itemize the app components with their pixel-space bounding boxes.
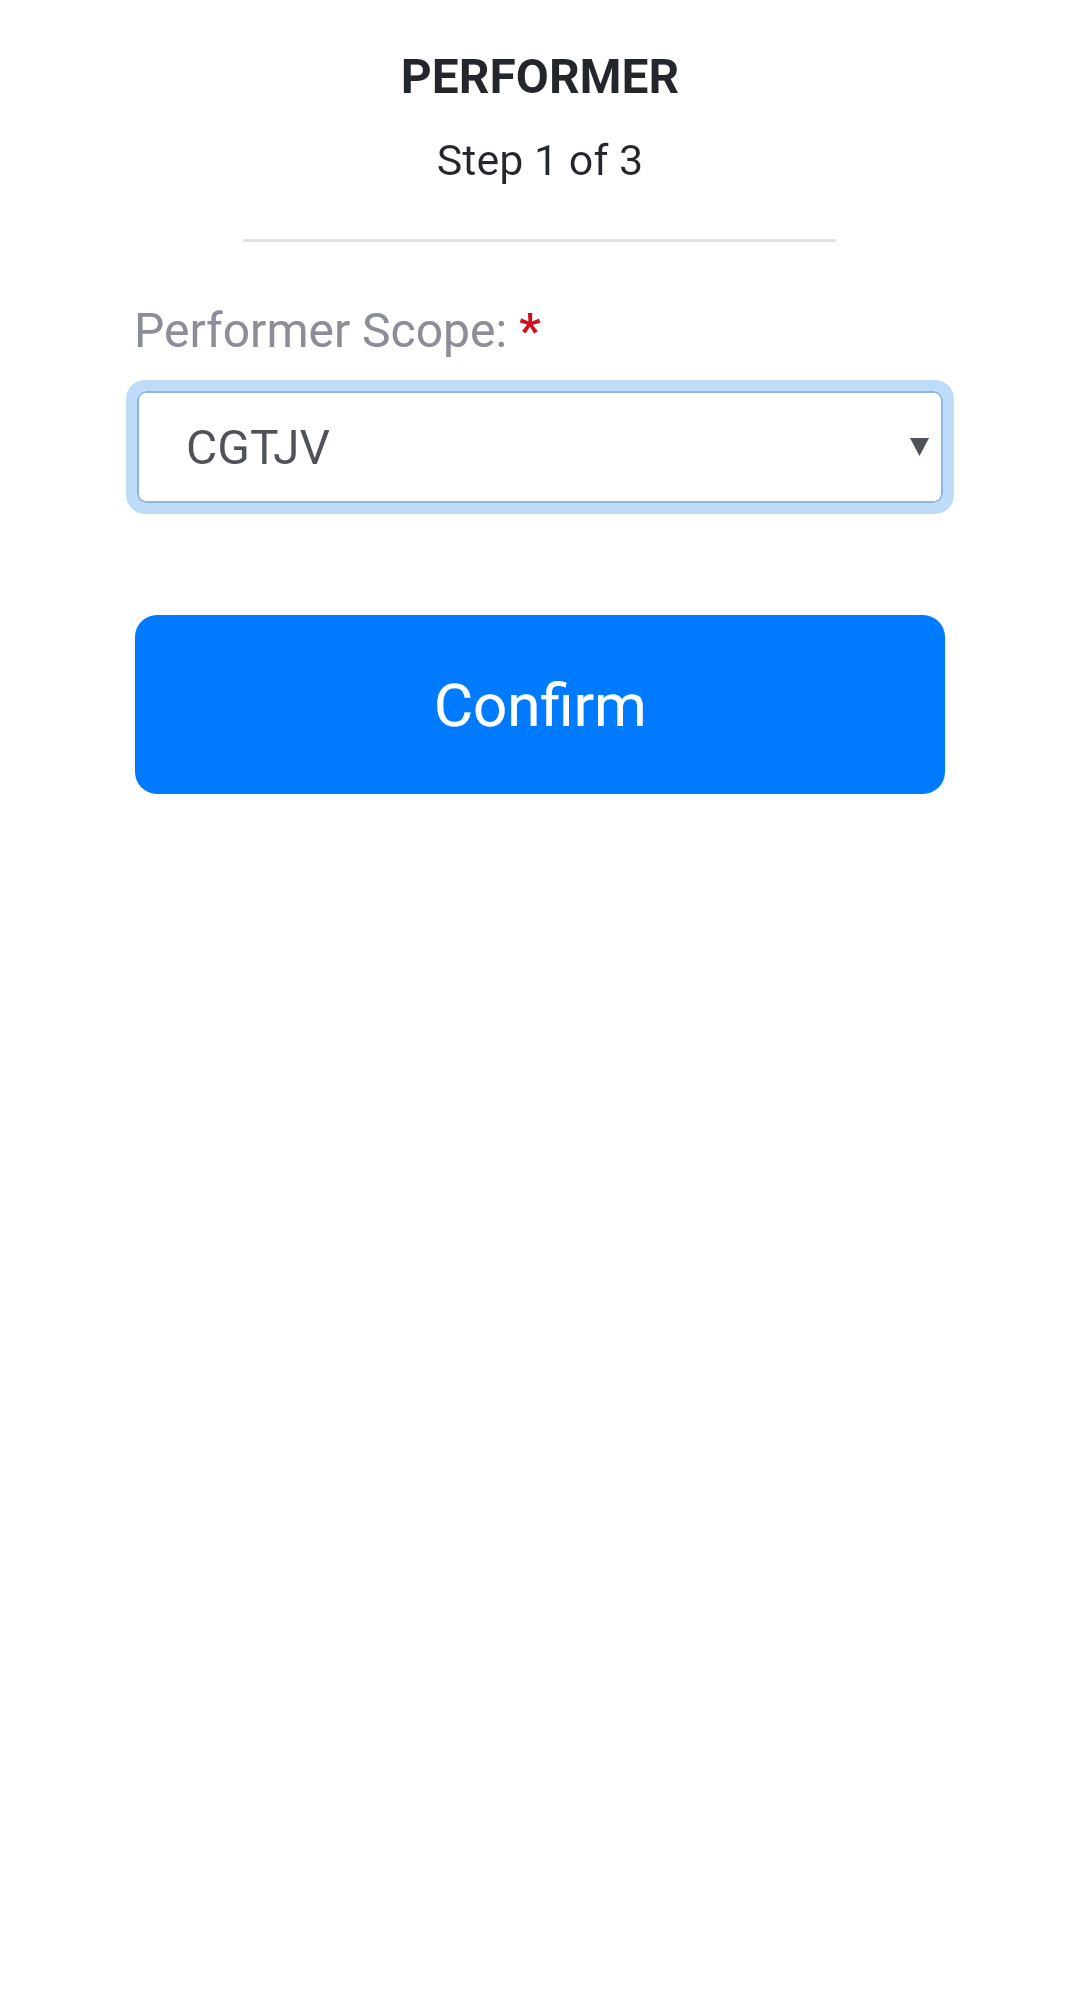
staticText: Confirm	[434, 670, 647, 740]
staticText: PERFORMER	[0, 48, 1080, 104]
staticText: Step 1 of 3	[0, 135, 1080, 185]
button[interactable]: Confirm	[135, 615, 945, 794]
staticText: Performer Scope: *	[134, 302, 541, 358]
staticText: CGTJV	[186, 419, 330, 475]
button[interactable]: Performer Scope, CGTJV selected	[137, 391, 943, 503]
